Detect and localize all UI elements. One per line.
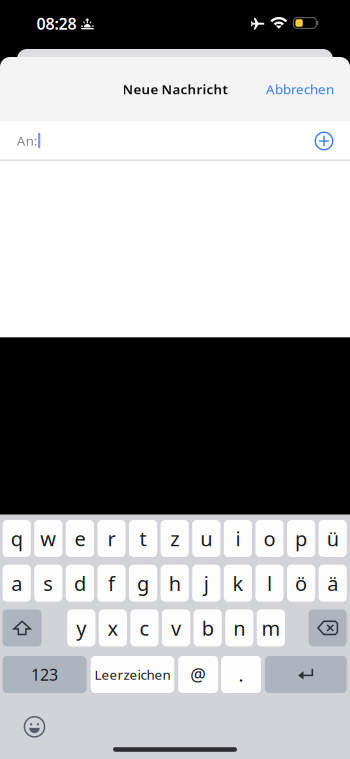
button[interactable]: c xyxy=(130,609,159,646)
staticText: m xyxy=(261,615,280,641)
button[interactable]: f xyxy=(97,565,126,602)
staticText: k xyxy=(232,570,243,596)
staticText: i xyxy=(235,525,240,552)
staticText: d xyxy=(74,570,86,596)
staticText: t xyxy=(140,525,147,552)
staticText: ü xyxy=(327,525,339,552)
staticText: o xyxy=(263,525,275,552)
button[interactable]: s xyxy=(34,565,62,602)
button[interactable]: Umschalttaste xyxy=(2,609,42,646)
staticText: z xyxy=(170,525,179,552)
button[interactable]: p xyxy=(287,520,315,557)
staticText: j xyxy=(204,570,209,596)
button[interactable]: d xyxy=(66,565,94,602)
button[interactable]: ü xyxy=(319,520,347,557)
button[interactable]: w xyxy=(34,520,62,557)
staticText: An: xyxy=(17,132,38,149)
button[interactable]: v xyxy=(162,609,190,646)
staticText: e xyxy=(74,525,85,552)
button[interactable]: b xyxy=(194,609,222,646)
button[interactable]: k xyxy=(224,565,252,602)
staticText: 123 xyxy=(31,664,58,685)
button[interactable]: e xyxy=(66,520,94,557)
staticText: f xyxy=(108,570,115,596)
staticText: a xyxy=(11,570,22,596)
button[interactable]: l xyxy=(255,565,284,602)
staticText: n xyxy=(233,615,245,641)
button[interactable]: . xyxy=(221,656,261,693)
button[interactable]: i xyxy=(224,520,252,557)
button[interactable]: h xyxy=(161,565,189,602)
button[interactable]: y xyxy=(67,609,95,646)
staticText: ö xyxy=(295,570,307,596)
button[interactable]: q xyxy=(3,520,31,557)
staticText: y xyxy=(76,615,86,641)
staticText: v xyxy=(171,615,181,641)
button[interactable]: u xyxy=(192,520,220,557)
button[interactable]: Zahlen und Symbole xyxy=(3,656,87,693)
staticText: ä xyxy=(327,570,338,596)
staticText: c xyxy=(139,615,149,641)
staticText: r xyxy=(107,525,115,552)
button[interactable]: x xyxy=(99,609,127,646)
staticText: l xyxy=(267,570,272,596)
button[interactable]: ö xyxy=(287,565,315,602)
button[interactable]: o xyxy=(255,520,284,557)
staticText: x xyxy=(107,615,118,641)
staticText: u xyxy=(200,525,212,552)
button[interactable]: Zeilenumbruch xyxy=(265,656,347,693)
staticText: 08:28 xyxy=(36,13,76,34)
staticText: h xyxy=(169,570,181,596)
button[interactable]: r xyxy=(97,520,126,557)
button[interactable]: t xyxy=(129,520,157,557)
staticText: b xyxy=(202,615,214,641)
button[interactable]: z xyxy=(161,520,189,557)
button[interactable]: m xyxy=(257,609,285,646)
staticText: Leerzeichen xyxy=(95,666,171,683)
button[interactable]: g xyxy=(129,565,157,602)
staticText: . xyxy=(238,662,243,687)
button[interactable]: @ xyxy=(178,656,218,693)
button[interactable]: Leerzeichen xyxy=(91,656,174,693)
staticText: q xyxy=(11,525,23,552)
button[interactable]: Emoji xyxy=(16,709,52,745)
button[interactable]: n xyxy=(225,609,253,646)
staticText: Neue Nachricht xyxy=(122,80,227,98)
button[interactable]: Kontakt hinzufügen xyxy=(307,124,341,158)
staticText: Abbrechen xyxy=(266,80,334,98)
button[interactable]: Abbrechen xyxy=(257,72,343,106)
staticText: s xyxy=(43,570,53,596)
button[interactable]: ä xyxy=(319,565,347,602)
button[interactable]: a xyxy=(3,565,31,602)
button[interactable]: Löschen xyxy=(309,609,347,646)
staticText: @ xyxy=(190,663,206,686)
staticText: p xyxy=(295,525,307,552)
staticText: g xyxy=(137,570,149,596)
button[interactable]: j xyxy=(192,565,220,602)
staticText: w xyxy=(40,525,56,552)
